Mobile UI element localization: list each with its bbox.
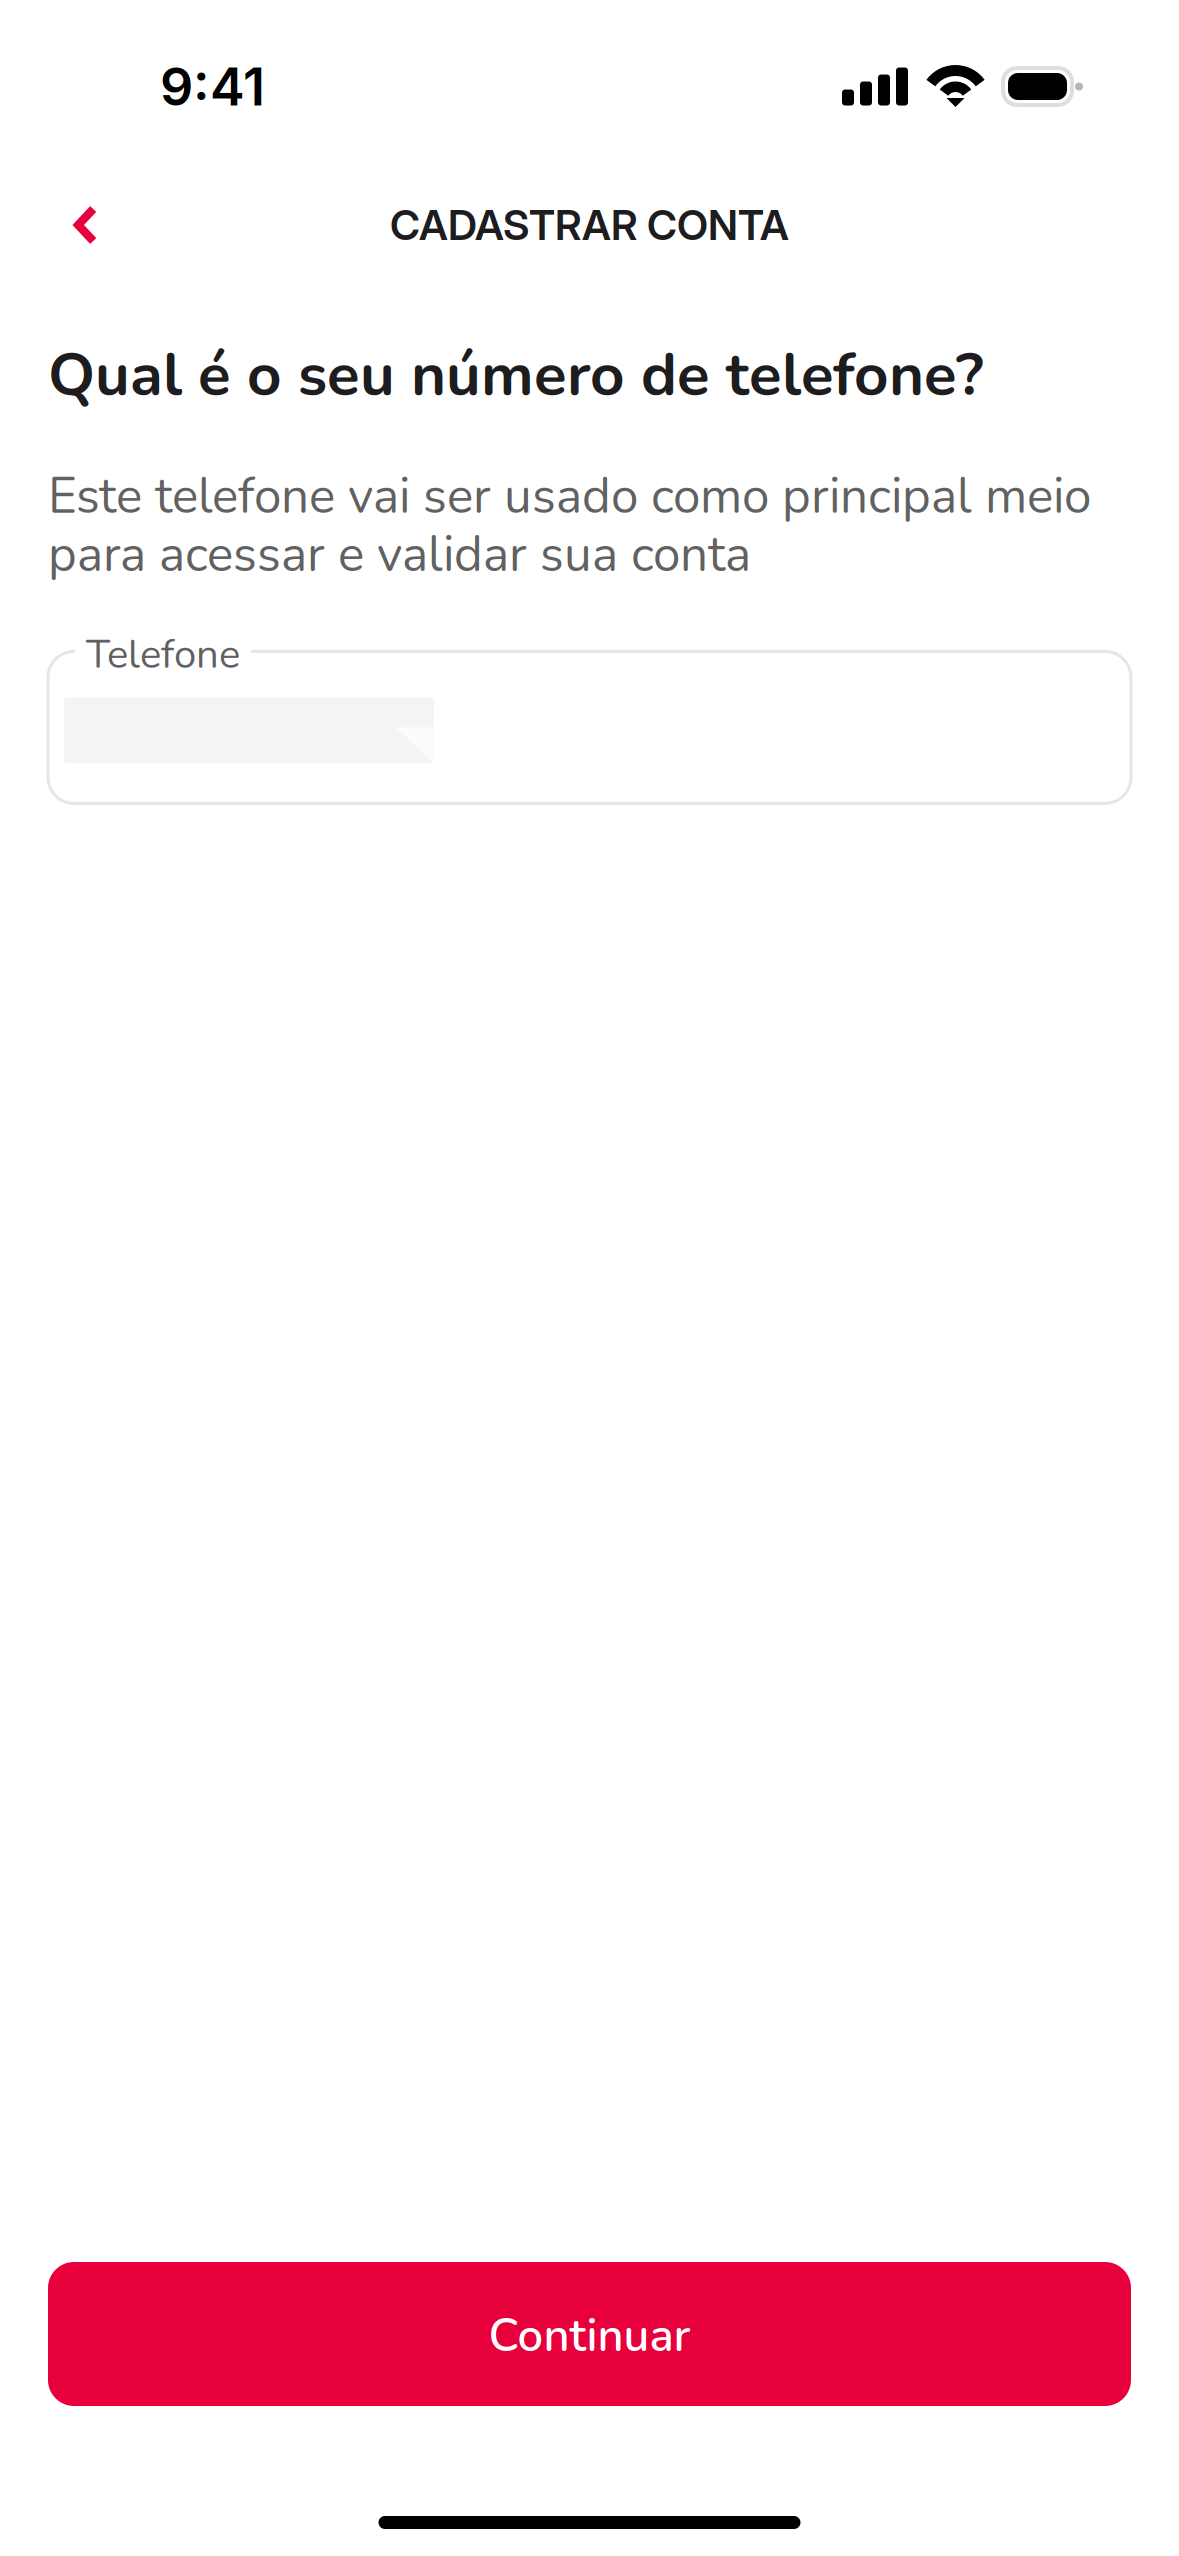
- staticText: Telefone: [86, 627, 240, 682]
- staticText: Continuar: [488, 2305, 690, 2367]
- staticText: Qual é o seu número de telefone?: [48, 334, 984, 416]
- staticText: CADASTRAR CONTA: [390, 200, 789, 250]
- button[interactable]: Continuar: [48, 2262, 1131, 2406]
- staticText: para acessar e validar sua conta: [48, 521, 751, 588]
- button[interactable]: Voltar: [49, 179, 141, 271]
- staticText: 9:41: [160, 55, 265, 118]
- staticText: Este telefone vai ser usado como princip…: [48, 463, 1091, 530]
